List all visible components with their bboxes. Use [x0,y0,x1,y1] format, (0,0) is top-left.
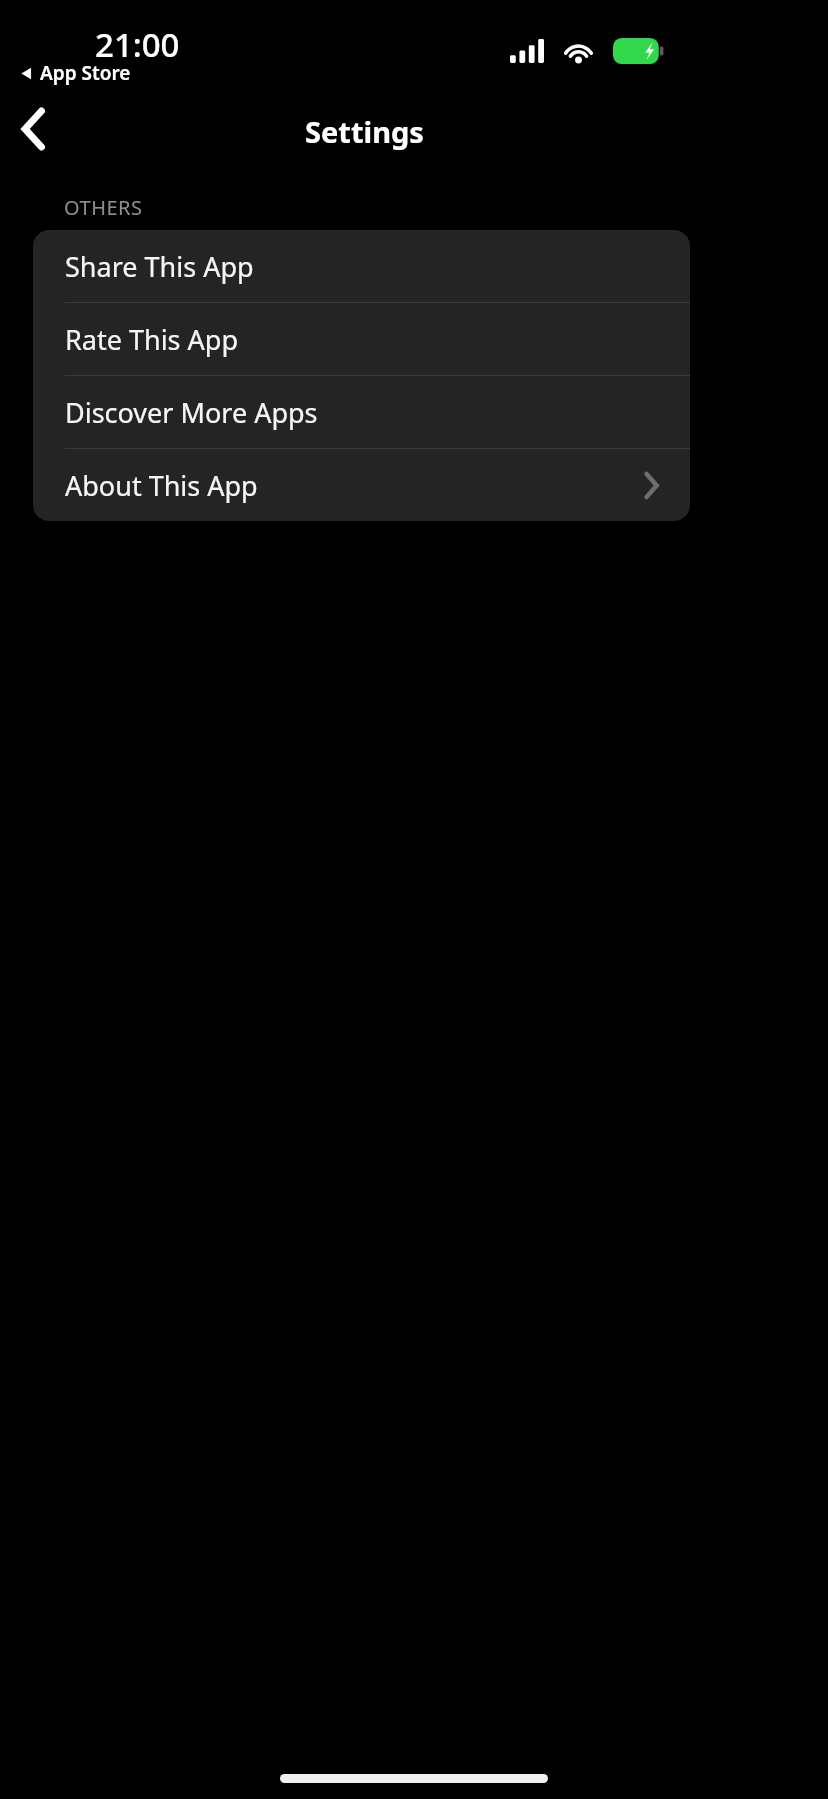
button[interactable]: Discover More Apps [33,376,690,449]
staticText: Settings [305,112,424,151]
staticText: Share This App [65,248,254,285]
staticText: About This App [65,467,258,504]
button[interactable]: Share This App [33,230,690,303]
button[interactable]: Rate This App [33,303,690,376]
staticText: 21:00 [95,22,180,67]
staticText: App Store [40,60,131,86]
button[interactable]: About This App [33,449,690,521]
staticText: Discover More Apps [65,394,318,431]
staticText: Rate This App [65,321,239,358]
staticText: OTHERS [64,194,143,221]
button[interactable]: Back [4,100,62,158]
